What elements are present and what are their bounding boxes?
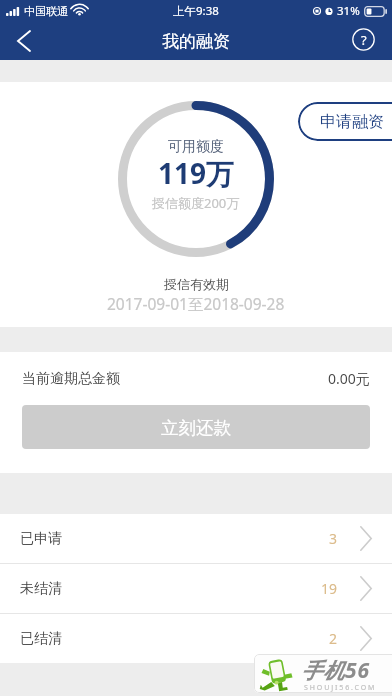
staticText: 申请融资 [320,112,384,132]
staticText: 我的融资 [162,31,230,52]
staticText: 19 [321,579,338,598]
staticText: 中国联通 [24,4,68,18]
staticText: 未结清 [20,580,62,598]
staticText: 授信额度200万 [152,194,240,212]
staticText: 3 [329,529,338,548]
staticText: 手机56 [301,656,371,685]
staticText: 立刻还款 [161,417,231,439]
staticText: 已申请 [20,530,62,548]
staticText: 31% [337,3,360,19]
button[interactable]: 已结清 [0,614,392,663]
staticText: 可用额度 [168,138,224,156]
button[interactable]: 申请融资 [298,102,392,141]
button[interactable]: Back [0,22,46,60]
staticText: 上午9:38 [173,3,219,19]
staticText: 已结清 [20,630,62,648]
staticText: 当前逾期总金额 [22,370,120,388]
button[interactable]: 已申请 [0,514,392,563]
staticText: 0.00元 [328,369,370,388]
button[interactable]: Help [346,22,392,60]
staticText: ? [361,31,367,49]
button[interactable]: 未结清 [0,564,392,613]
staticText: SHOUJI56.COM [304,683,377,693]
staticText: 授信有效期 [164,276,229,292]
staticText: 2017-09-01至2018-09-28 [107,293,285,314]
button[interactable]: 立刻还款 [22,405,370,449]
staticText: 2 [329,629,338,648]
staticText: 119万 [158,154,235,192]
